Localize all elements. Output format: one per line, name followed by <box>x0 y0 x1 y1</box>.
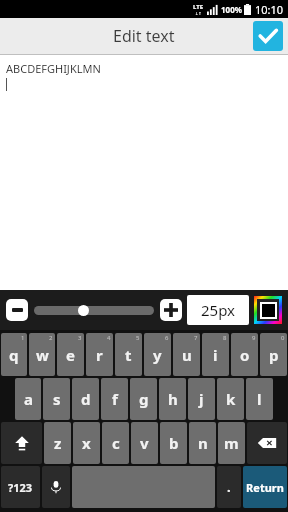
staticText: g <box>139 389 149 409</box>
button[interactable]: z <box>44 422 71 464</box>
staticText: s <box>53 389 61 409</box>
staticText: a <box>24 389 33 409</box>
button[interactable]: b <box>160 422 187 464</box>
button[interactable]: v <box>131 422 158 464</box>
staticText: Edit text <box>113 25 175 47</box>
staticText: Return <box>246 480 284 495</box>
button[interactable]: f <box>101 378 128 420</box>
button[interactable]: 2 <box>29 333 55 376</box>
button[interactable]: l <box>246 378 273 420</box>
staticText: z <box>54 433 62 453</box>
staticText: 3 <box>78 334 82 342</box>
staticText: t <box>125 345 132 365</box>
staticText: e <box>66 345 75 365</box>
button[interactable]: 9 <box>231 333 258 376</box>
staticText: 5 <box>136 334 140 342</box>
button[interactable]: 5 <box>115 333 142 376</box>
staticText: f <box>112 389 118 409</box>
staticText: ?123 <box>8 480 33 495</box>
staticText: 10:10 <box>255 2 284 17</box>
button[interactable] <box>34 299 154 321</box>
button[interactable]: 0 <box>260 333 287 376</box>
staticText: j <box>199 389 204 409</box>
button[interactable]: . <box>217 466 241 508</box>
staticText: 4 <box>107 334 111 342</box>
button[interactable]: ?123 <box>1 466 40 508</box>
button[interactable]: m <box>218 422 245 464</box>
button[interactable]: 8 <box>202 333 229 376</box>
staticText: ABCDEFGHIJKLMN <box>6 61 101 76</box>
staticText: 6 <box>165 334 169 342</box>
staticText: 8 <box>223 334 227 342</box>
staticText: h <box>168 389 178 409</box>
staticText: LTE <box>193 3 204 11</box>
staticText: y <box>153 345 162 365</box>
button[interactable]: Return <box>243 466 287 508</box>
button[interactable]: Increase size <box>160 299 182 321</box>
staticText: ↓↑ <box>195 11 202 16</box>
staticText: c <box>112 433 120 453</box>
staticText: q <box>9 345 19 365</box>
staticText: u <box>182 345 192 365</box>
staticText: 7 <box>194 334 198 342</box>
button[interactable]: c <box>102 422 129 464</box>
staticText: r <box>96 345 103 365</box>
staticText: b <box>169 433 179 453</box>
button[interactable]: Backspace <box>247 422 287 464</box>
staticText: d <box>81 389 91 409</box>
button[interactable]: 25px <box>187 295 249 325</box>
staticText: p <box>269 345 279 365</box>
staticText: m <box>224 433 239 453</box>
button[interactable]: x <box>73 422 100 464</box>
button[interactable]: Choose colour <box>254 296 282 324</box>
staticText: v <box>140 433 149 453</box>
button[interactable]: j <box>188 378 215 420</box>
staticText: . <box>227 478 231 496</box>
button[interactable]: Voice input <box>42 466 70 508</box>
button[interactable]: s <box>43 378 70 420</box>
staticText: 100% <box>221 4 242 15</box>
button[interactable]: Done <box>253 21 283 51</box>
button[interactable]: Decrease size <box>6 299 28 321</box>
button[interactable]: k <box>217 378 244 420</box>
button[interactable]: a <box>15 378 41 420</box>
staticText: 25px <box>201 300 236 320</box>
staticText: k <box>226 389 236 409</box>
staticText: l <box>257 389 262 409</box>
staticText: w <box>36 345 49 365</box>
button[interactable]: 1 <box>1 333 27 376</box>
staticText: n <box>198 433 208 453</box>
staticText: o <box>240 345 250 365</box>
button[interactable]: n <box>189 422 216 464</box>
staticText: 1 <box>21 334 25 342</box>
staticText: i <box>213 345 218 365</box>
staticText: 9 <box>252 334 256 342</box>
button[interactable]: h <box>159 378 186 420</box>
button[interactable]: 3 <box>57 333 84 376</box>
button[interactable]: g <box>130 378 157 420</box>
button[interactable]: 4 <box>86 333 113 376</box>
staticText: 0 <box>281 334 285 342</box>
staticText: 2 <box>49 334 53 342</box>
button[interactable]: Shift <box>1 422 42 464</box>
button[interactable]: 7 <box>173 333 200 376</box>
button[interactable]: 6 <box>144 333 171 376</box>
button[interactable]: d <box>72 378 99 420</box>
staticText: x <box>82 433 91 453</box>
